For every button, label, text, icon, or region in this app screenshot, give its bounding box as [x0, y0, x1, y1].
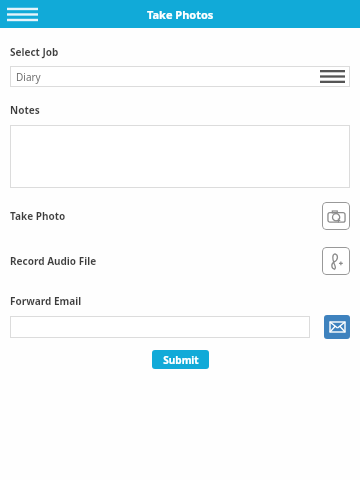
staticText: Diary: [16, 70, 41, 84]
button[interactable]: [10, 125, 350, 188]
staticText: Select Job: [10, 45, 59, 59]
button[interactable]: Submit: [152, 350, 209, 369]
staticText: Notes: [10, 103, 40, 117]
staticText: Take Photo: [10, 209, 66, 223]
button[interactable]: Take Photo: [322, 202, 350, 230]
staticText: Record Audio File: [10, 254, 97, 268]
button[interactable]: Select Job dropdown: [10, 66, 350, 87]
button[interactable]: Record Audio File: [322, 247, 350, 275]
staticText: Forward Email: [10, 294, 82, 308]
button[interactable]: Forward Email address field: [10, 316, 310, 338]
staticText: Take Photos: [147, 7, 214, 22]
button[interactable]: Open navigation menu: [7, 2, 38, 26]
staticText: Submit: [163, 353, 199, 367]
button[interactable]: Send email: [324, 315, 350, 339]
